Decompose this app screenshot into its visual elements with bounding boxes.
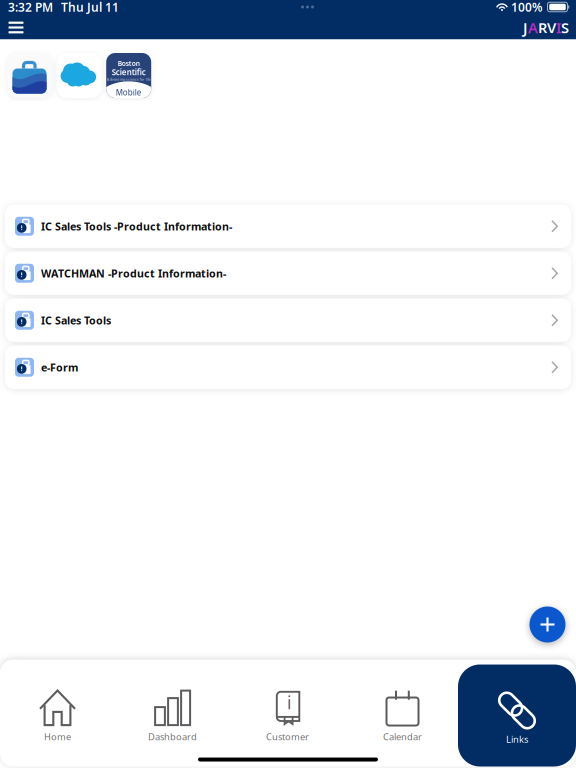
staticText: Mobile: [116, 87, 142, 98]
staticText: Links: [506, 733, 528, 745]
button[interactable]: WATCHMAN -Product Information-: [5, 251, 571, 295]
button[interactable]: Links: [459, 662, 574, 768]
staticText: Thu Jul 11: [61, 0, 119, 15]
staticText: IC Sales Tools -Product Information-: [41, 219, 232, 233]
staticText: 100%: [511, 0, 543, 15]
button[interactable]: Calendar: [345, 659, 460, 766]
staticText: Advancing science for life: [107, 76, 151, 82]
staticText: S: [561, 18, 569, 37]
button[interactable]: JARVIS: [523, 15, 569, 39]
button[interactable]: Salesforce app: [57, 53, 102, 98]
button[interactable]: i: [230, 659, 345, 766]
button[interactable]: Menu: [4, 15, 28, 39]
button[interactable]: e-Form: [5, 345, 571, 389]
staticText: Customer: [266, 730, 309, 743]
button[interactable]: Home: [0, 659, 115, 766]
staticText: Calendar: [383, 730, 422, 743]
button[interactable]: Dashboard: [115, 659, 230, 766]
staticText: Scientific: [112, 67, 146, 77]
staticText: IC Sales Tools: [41, 313, 111, 327]
button[interactable]: Briefcase app: [7, 53, 52, 98]
staticText: RV: [538, 18, 556, 37]
button[interactable]: IC Sales Tools: [5, 298, 571, 342]
staticText: Home: [44, 730, 71, 743]
button[interactable]: Add: [525, 602, 569, 646]
button[interactable]: IC Sales Tools -Product Information-: [5, 204, 571, 248]
staticText: I: [556, 18, 561, 37]
staticText: e-Form: [41, 360, 78, 374]
staticText: WATCHMAN -Product Information-: [41, 266, 226, 280]
staticText: A: [528, 18, 538, 37]
staticText: Boston: [118, 59, 140, 68]
staticText: Dashboard: [148, 730, 197, 743]
staticText: 3:32 PM: [8, 0, 53, 15]
staticText: i: [287, 691, 291, 714]
button[interactable]: Boston Scientific Mobile app: [106, 53, 151, 98]
staticText: J: [523, 18, 528, 37]
